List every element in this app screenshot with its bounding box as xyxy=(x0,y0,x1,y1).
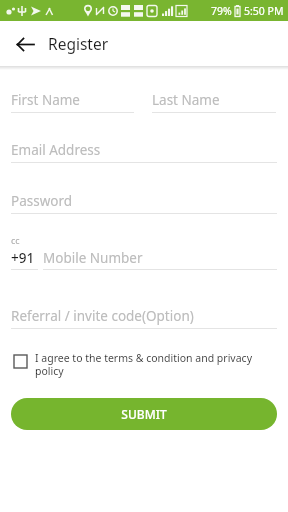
staticText: SUBMIT xyxy=(121,406,167,422)
button[interactable]: Email Address xyxy=(11,140,277,163)
staticText: +91 xyxy=(11,249,35,267)
button[interactable]: First Name xyxy=(11,90,134,113)
button[interactable]: SUBMIT xyxy=(11,398,277,430)
staticText: I agree to the terms & condition and pri… xyxy=(35,351,277,378)
staticText: Referral / invite code(Option) xyxy=(11,307,194,325)
button[interactable]: Password xyxy=(11,191,277,214)
button[interactable]: I agree checkbox xyxy=(11,351,277,378)
button[interactable]: Last Name xyxy=(152,90,276,113)
staticText: Password xyxy=(11,192,73,210)
button[interactable]: +91 xyxy=(11,249,38,270)
staticText: cc xyxy=(11,234,20,246)
other: I agree checkbox xyxy=(14,355,27,368)
staticText: 79% xyxy=(211,4,232,18)
staticText: Mobile Number xyxy=(43,249,143,267)
button[interactable]: Referral / invite code(Option) xyxy=(11,306,277,329)
staticText: 5:50 PM xyxy=(244,4,284,18)
button[interactable]: Back xyxy=(11,30,39,58)
staticText: Last Name xyxy=(152,91,220,109)
staticText: Register xyxy=(48,33,109,54)
staticText: First Name xyxy=(11,91,80,109)
staticText: Email Address xyxy=(11,141,101,159)
button[interactable]: Mobile Number xyxy=(43,249,277,270)
